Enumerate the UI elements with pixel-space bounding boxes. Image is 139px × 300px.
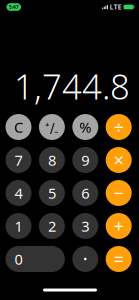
staticText: 0: [14, 249, 22, 269]
staticText: 1: [14, 216, 22, 236]
staticText: 6: [81, 183, 89, 203]
staticText: 7: [14, 150, 22, 170]
button[interactable]: Decimal point: [72, 246, 98, 272]
staticText: 9: [81, 150, 89, 170]
staticText: 1,744.8: [14, 63, 130, 109]
staticText: 3: [81, 216, 89, 236]
button[interactable]: 8: [39, 147, 65, 173]
staticText: 4: [14, 183, 22, 203]
staticText: C: [14, 117, 23, 137]
button[interactable]: Clear: [5, 114, 31, 140]
staticText: ×: [114, 148, 124, 171]
button[interactable]: 1: [5, 213, 31, 239]
button[interactable]: 6: [72, 180, 98, 206]
button[interactable]: Subtract: [106, 180, 132, 206]
button[interactable]: Multiply: [106, 147, 132, 173]
button[interactable]: 3: [72, 213, 98, 239]
button[interactable]: 4: [5, 180, 31, 206]
button[interactable]: Percent: [72, 114, 98, 140]
staticText: 5: [48, 183, 56, 203]
staticText: %: [79, 117, 91, 137]
button[interactable]: 0: [5, 246, 65, 272]
staticText: 2: [48, 216, 56, 236]
staticText: 8: [48, 150, 56, 170]
staticText: ÷: [114, 115, 124, 138]
staticText: +: [114, 214, 124, 237]
button[interactable]: 5: [39, 180, 65, 206]
button[interactable]: 7: [5, 147, 31, 173]
staticText: ⁺∕₋: [45, 119, 59, 136]
staticText: 5:47: [9, 3, 19, 11]
button[interactable]: Equals: [106, 246, 132, 272]
staticText: LTE: [110, 3, 122, 11]
button[interactable]: 2: [39, 213, 65, 239]
staticText: −: [114, 181, 124, 204]
staticText: =: [114, 247, 124, 270]
button[interactable]: 9: [72, 147, 98, 173]
button[interactable]: Add: [106, 213, 132, 239]
button[interactable]: Plus minus, change sign: [39, 114, 65, 140]
button[interactable]: Divide: [106, 114, 132, 140]
